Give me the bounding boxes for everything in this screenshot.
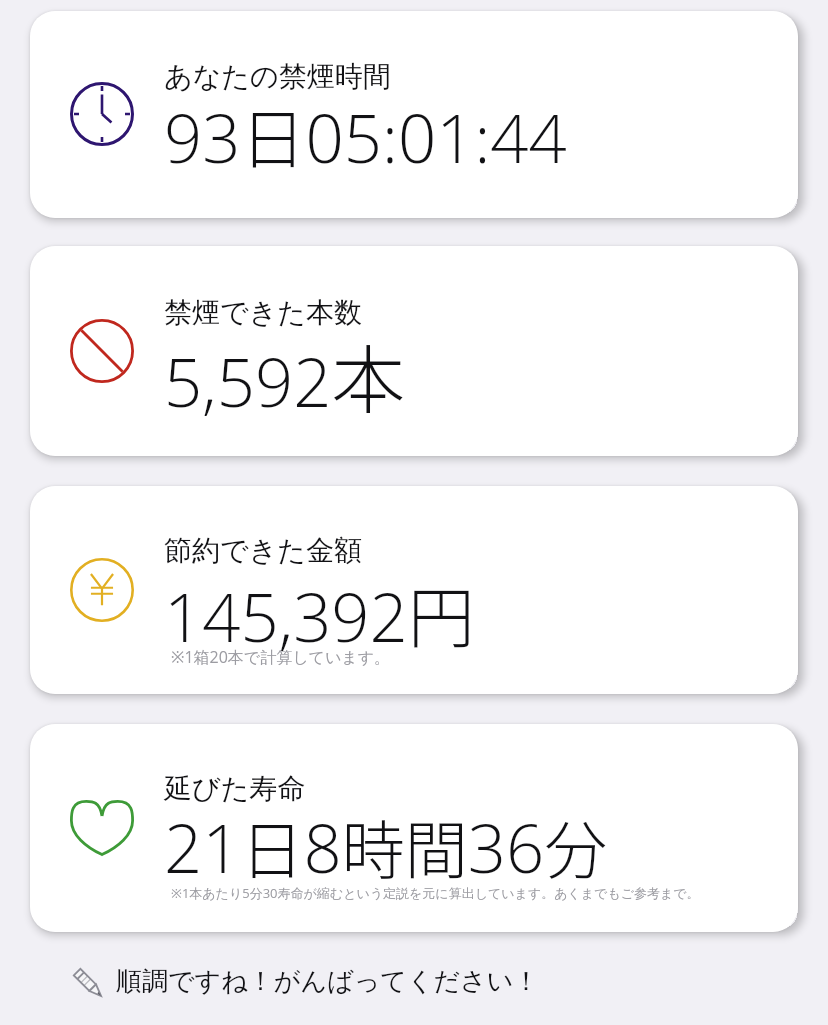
- staticText: 5,592本: [164, 321, 406, 428]
- staticText: 21日8時間36分: [164, 800, 608, 893]
- button[interactable]: Smoke free time: [30, 11, 798, 218]
- button[interactable]: Cigarettes not smoked: [30, 246, 798, 456]
- other: Smoke free time: [70, 82, 134, 146]
- other: Life expectancy gained: [70, 796, 134, 860]
- other: Money saved: [70, 558, 134, 622]
- staticText: 節約できた金額: [164, 533, 362, 568]
- staticText: 145,392円: [164, 564, 475, 661]
- staticText: 延びた寿命: [164, 771, 306, 806]
- staticText: あなたの禁煙時間: [164, 59, 391, 94]
- staticText: 禁煙できた本数: [164, 295, 362, 330]
- staticText: 93日05:01:44: [164, 88, 567, 183]
- staticText: 順調ですね！がんばってください！: [116, 965, 540, 998]
- staticText: ※1箱20本で計算しています。: [171, 646, 391, 668]
- button[interactable]: Life expectancy gained: [30, 724, 798, 932]
- button[interactable]: Money saved: [30, 486, 798, 694]
- staticText: ※1本あたり5分30寿命が縮むという定説を元に算出しています。あくまでもご参考ま…: [171, 884, 700, 902]
- other: Encouragement: [72, 967, 102, 997]
- other: Cigarettes not smoked: [70, 319, 134, 383]
